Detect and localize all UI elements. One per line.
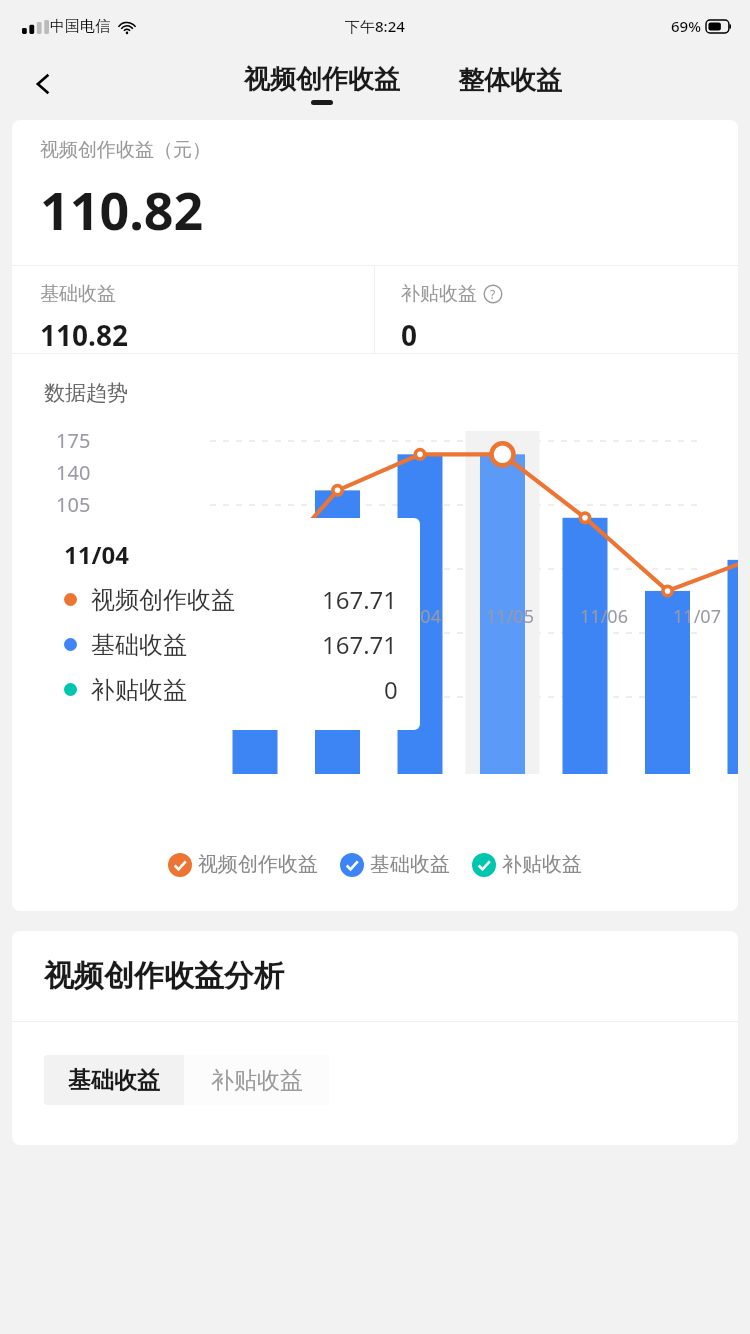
staticText: 视频创作收益 bbox=[198, 852, 318, 877]
staticText: 基础收益 bbox=[91, 630, 187, 660]
staticText: 0 bbox=[401, 316, 418, 353]
staticText: 11/06 bbox=[577, 604, 631, 629]
staticText: 补贴收益 bbox=[211, 1066, 303, 1095]
staticText: 110.82 bbox=[40, 174, 204, 245]
button[interactable]: 整体收益 bbox=[450, 68, 570, 101]
button[interactable]: 视频创作收益 bbox=[168, 848, 318, 881]
staticText: 视频创作收益 bbox=[91, 585, 235, 615]
staticText: 105 bbox=[56, 491, 91, 518]
staticText: ? bbox=[490, 286, 496, 302]
staticText: 11/04 bbox=[390, 604, 444, 629]
staticText: 167.71 bbox=[322, 628, 398, 661]
staticText: 11/05 bbox=[483, 604, 537, 629]
button[interactable]: Info bbox=[483, 284, 503, 304]
staticText: 69% bbox=[671, 16, 701, 36]
staticText: 基础收益 bbox=[370, 852, 450, 877]
staticText: 175 bbox=[56, 427, 91, 454]
staticText: 视频创作收益 bbox=[244, 63, 400, 96]
button[interactable]: 补贴收益 bbox=[472, 848, 582, 881]
button[interactable]: 基础收益 bbox=[44, 1055, 184, 1105]
staticText: 视频创作收益（元） bbox=[40, 138, 211, 162]
staticText: 补贴收益 bbox=[91, 675, 187, 705]
staticText: 整体收益 bbox=[458, 64, 562, 97]
staticText: 基础收益 bbox=[40, 282, 116, 306]
staticText: 140 bbox=[56, 459, 91, 486]
button[interactable]: 视频创作收益 bbox=[236, 63, 408, 105]
staticText: 补贴收益 bbox=[401, 282, 477, 306]
staticText: 167.71 bbox=[322, 583, 398, 616]
staticText: 11/03 bbox=[297, 604, 351, 629]
staticText: 下午8:24 bbox=[345, 16, 405, 36]
staticText: 110.82 bbox=[40, 316, 128, 353]
staticText: 视频创作收益分析 bbox=[44, 957, 284, 995]
staticText: 基础收益 bbox=[68, 1066, 160, 1095]
button[interactable]: 补贴收益 bbox=[184, 1055, 329, 1105]
staticText: 补贴收益 bbox=[502, 852, 582, 877]
button[interactable]: 基础收益 bbox=[340, 848, 450, 881]
staticText: 11/04 bbox=[64, 538, 129, 571]
button[interactable]: Back bbox=[18, 58, 70, 110]
staticText: 数据趋势 bbox=[44, 380, 128, 406]
staticText: 0 bbox=[384, 673, 398, 706]
staticText: 11/02 bbox=[203, 604, 257, 629]
staticText: 11/07 bbox=[670, 604, 724, 629]
staticText: 11/01 bbox=[110, 604, 164, 629]
staticText: 中国电信 bbox=[50, 17, 110, 36]
